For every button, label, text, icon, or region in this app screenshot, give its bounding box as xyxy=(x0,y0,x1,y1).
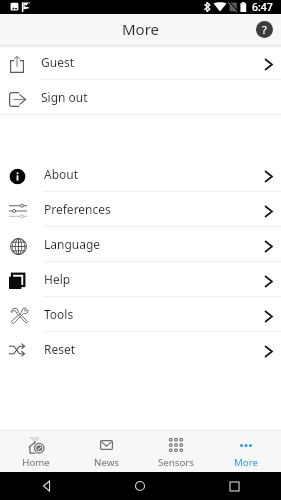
button[interactable]: Sign out xyxy=(0,80,281,114)
staticText: Home xyxy=(22,456,50,469)
button[interactable]: More xyxy=(211,430,281,472)
staticText: More xyxy=(234,456,258,469)
button[interactable]: Help xyxy=(0,262,281,296)
staticText: Guest xyxy=(41,54,75,70)
button[interactable]: Tools xyxy=(0,297,281,331)
staticText: News xyxy=(94,456,119,469)
staticText: Sign out xyxy=(41,89,88,105)
button[interactable]: Preferences xyxy=(0,192,281,226)
staticText: More xyxy=(122,19,160,39)
button[interactable]: Language xyxy=(0,227,281,261)
button[interactable]: Sensors xyxy=(141,430,211,472)
staticText: Tools xyxy=(44,306,74,322)
staticText: Help xyxy=(44,271,71,287)
staticText: ? xyxy=(262,22,267,37)
button[interactable]: Home xyxy=(0,430,71,472)
staticText: 6:47 xyxy=(252,0,273,14)
button[interactable]: Help xyxy=(256,21,273,38)
button[interactable]: News xyxy=(71,430,141,472)
button[interactable]: About xyxy=(0,157,281,191)
staticText: About xyxy=(44,166,79,182)
staticText: Sensors xyxy=(158,456,194,469)
staticText: Reset xyxy=(44,341,76,357)
staticText: Language xyxy=(44,236,101,252)
button[interactable]: Guest xyxy=(0,45,281,79)
staticText: Preferences xyxy=(44,201,111,217)
button[interactable]: Reset xyxy=(0,332,281,366)
